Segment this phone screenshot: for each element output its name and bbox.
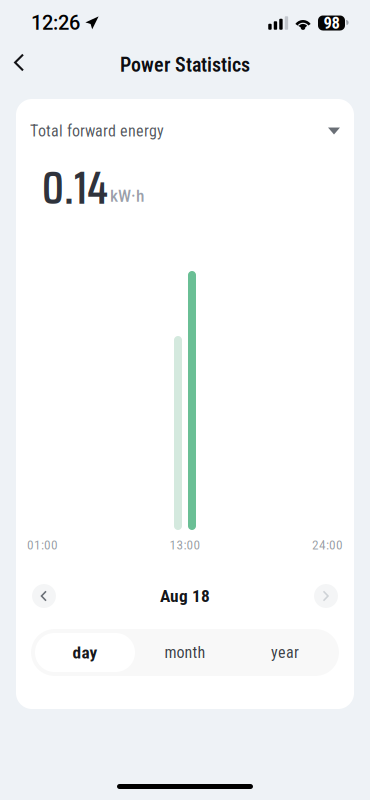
staticText: 98 (323, 13, 339, 33)
button[interactable]: Back (0, 46, 48, 84)
staticText: Aug 18 (160, 586, 210, 606)
button[interactable]: day (35, 633, 135, 672)
button[interactable]: Total forward energy (30, 99, 340, 140)
staticText: month (164, 643, 205, 662)
button[interactable]: Next day (314, 584, 338, 608)
staticText: 13:00 (169, 537, 200, 553)
button[interactable]: Previous day (32, 584, 56, 608)
staticText: 01:00 (27, 537, 58, 553)
staticText: 12:26 (31, 11, 80, 35)
staticText: 0.14 (42, 152, 108, 224)
button[interactable]: month (135, 633, 235, 672)
staticText: Power Statistics (120, 53, 250, 77)
staticText: year (271, 643, 299, 662)
button[interactable]: year (235, 633, 335, 672)
staticText: Total forward energy (30, 122, 164, 140)
staticText: day (72, 642, 97, 663)
staticText: 24:00 (312, 537, 343, 553)
staticText: kW·h (110, 186, 144, 206)
